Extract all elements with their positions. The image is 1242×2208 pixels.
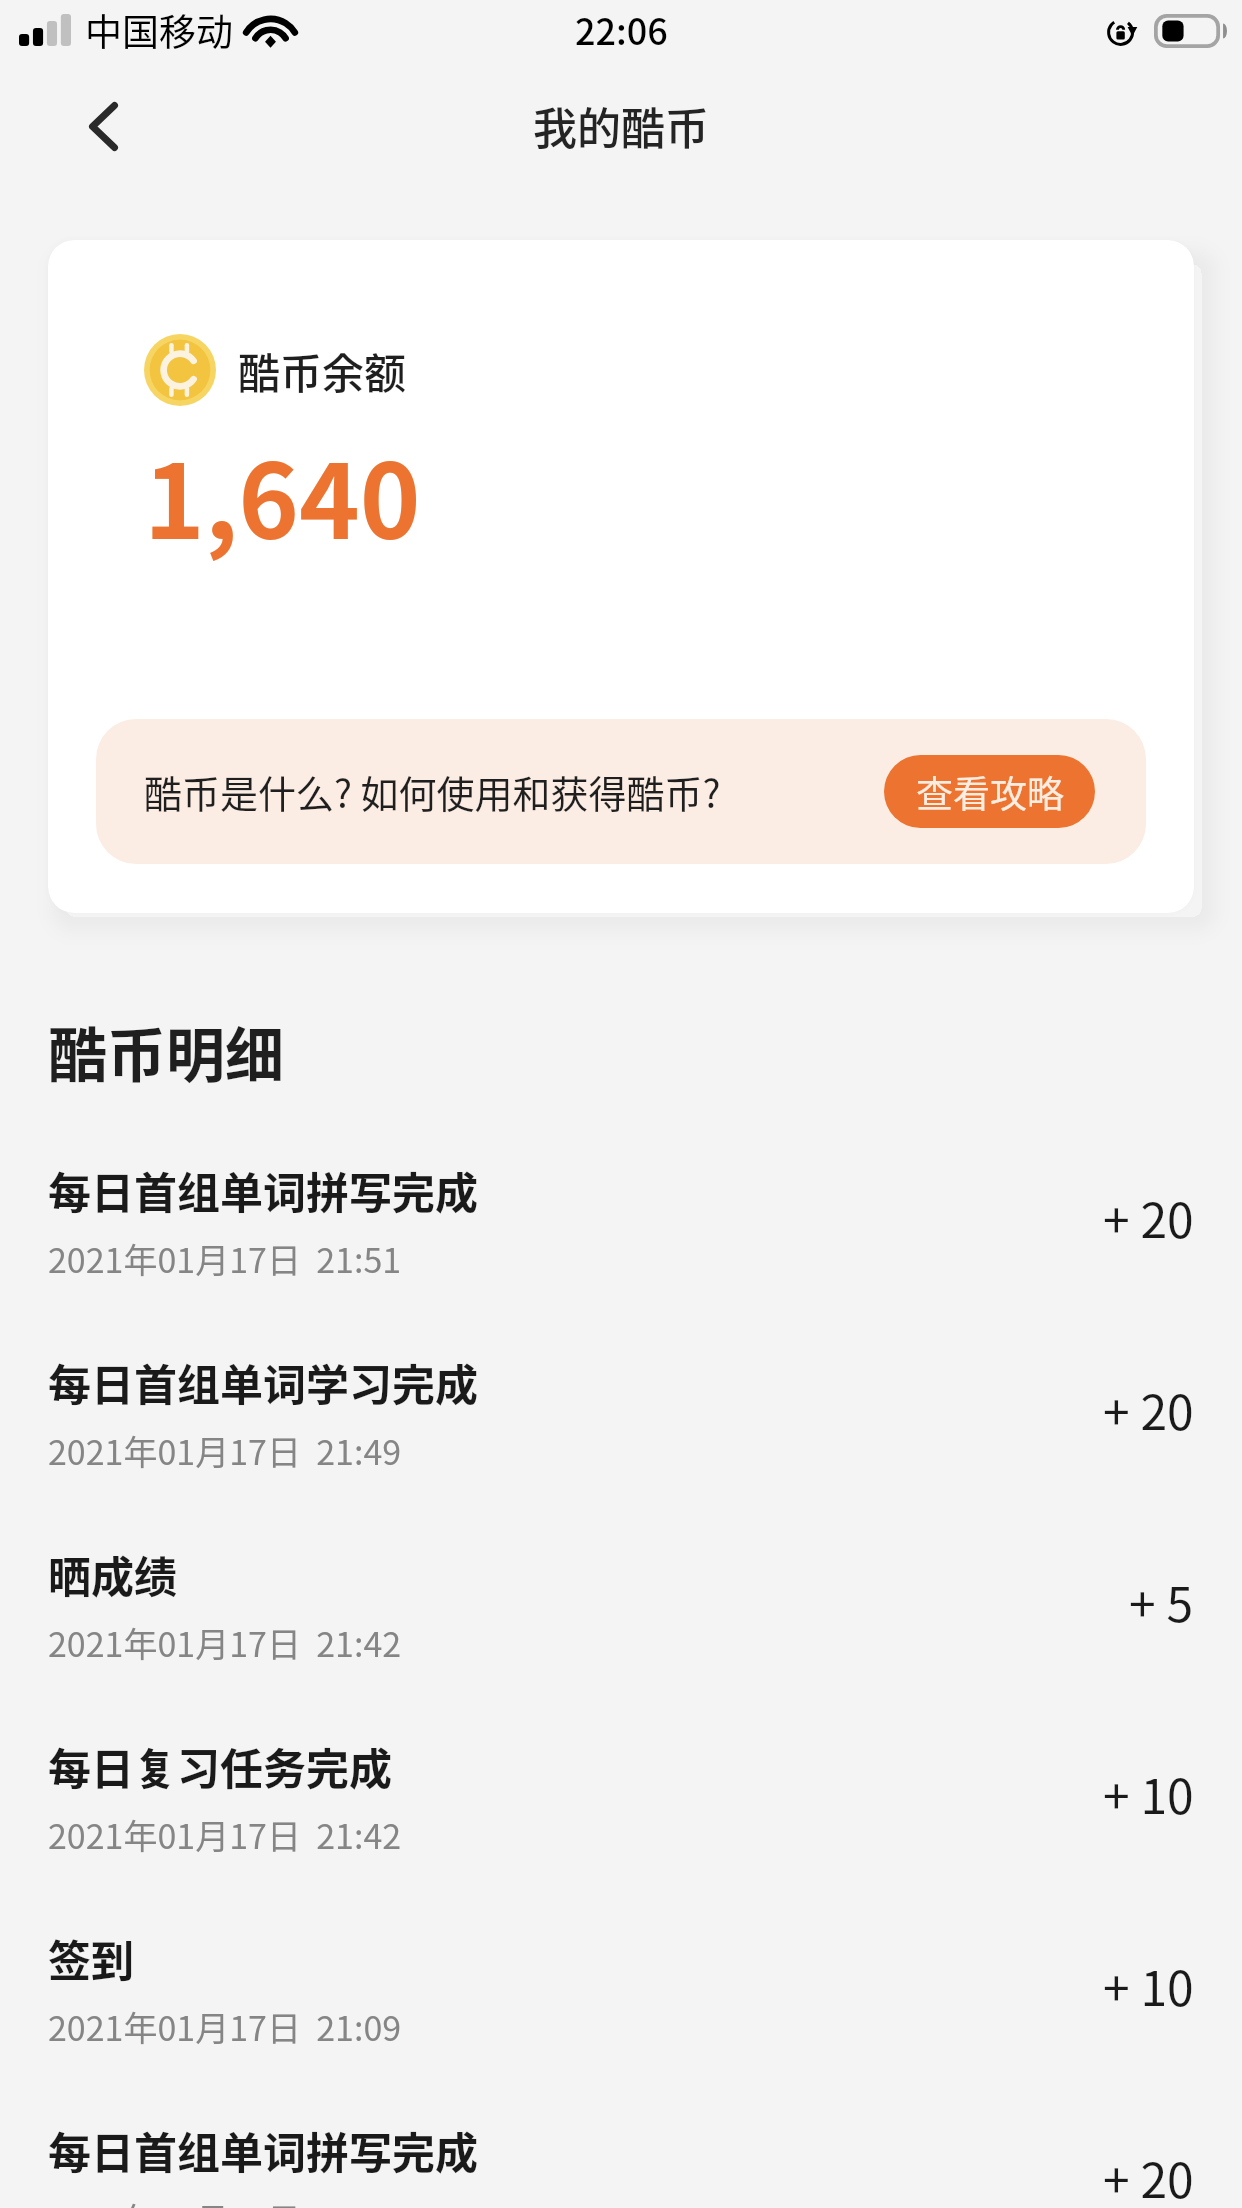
staticText: 每日首组单词拼写完成 <box>48 2119 478 2181</box>
staticText: 2021年01月17日 21:51 <box>48 1234 402 1283</box>
staticText: 22:06 <box>575 3 668 55</box>
staticText: 2021年01月17日 21:42 <box>48 1618 402 1667</box>
staticText: 晒成绩 <box>48 1543 177 1605</box>
staticText: 2021年01月17日 21:49 <box>48 1426 402 1475</box>
staticText: 酷币是什么? 如何使用和获得酷币? <box>144 764 721 819</box>
button[interactable]: 酷币是什么? 如何使用和获得酷币? <box>96 719 1146 864</box>
button[interactable]: 查看攻略 <box>884 755 1095 828</box>
staticText: 2021年01月16日 21:44 <box>48 2194 402 2208</box>
staticText: 我的酷币 <box>533 94 709 158</box>
staticText: 每日首组单词学习完成 <box>48 1351 478 1413</box>
button[interactable]: 每日首组单词拼写完成 <box>0 2119 1242 2208</box>
staticText: + 20 <box>1103 1374 1194 1444</box>
staticText: + 20 <box>1103 2142 1194 2208</box>
staticText: 酷币余额 <box>238 340 407 401</box>
staticText: 2021年01月17日 21:09 <box>48 2002 402 2051</box>
button[interactable]: 每日首组单词学习完成 <box>0 1351 1242 1543</box>
button[interactable]: 每日首组单词拼写完成 <box>0 1159 1242 1351</box>
staticText: 签到 <box>48 1927 134 1989</box>
staticText: 每日首组单词拼写完成 <box>48 1159 478 1221</box>
button[interactable]: 签到 <box>0 1927 1242 2119</box>
button[interactable]: 晒成绩 <box>0 1543 1242 1735</box>
staticText: 酷币明细 <box>48 1009 285 1094</box>
button[interactable]: Back <box>89 102 118 151</box>
staticText: 查看攻略 <box>916 765 1064 819</box>
staticText: + 10 <box>1103 1950 1194 2020</box>
staticText: + 20 <box>1103 1182 1194 1252</box>
button[interactable]: 每日复习任务完成 <box>0 1735 1242 1927</box>
staticText: + 10 <box>1103 1758 1194 1828</box>
staticText: + 5 <box>1129 1566 1194 1636</box>
staticText: 1,640 <box>144 420 421 569</box>
staticText: 中国移动 <box>85 3 233 57</box>
staticText: 每日复习任务完成 <box>48 1735 392 1797</box>
staticText: 2021年01月17日 21:42 <box>48 1810 402 1859</box>
